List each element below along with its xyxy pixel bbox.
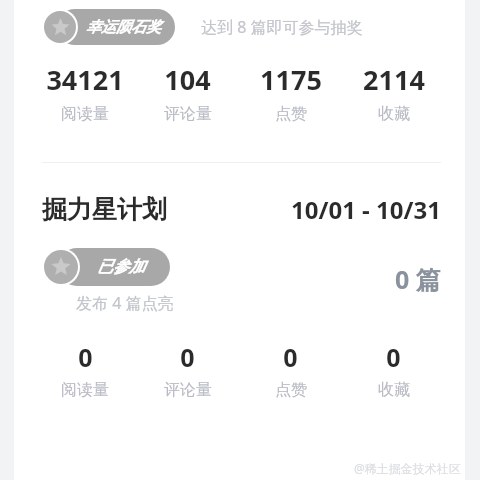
button[interactable]: 幸运陨石奖 [42,9,175,45]
staticText: 0 [78,340,93,374]
staticText: 阅读量 [61,104,109,124]
staticText: 10/01 - 10/31 [291,193,441,226]
staticText: 阅读量 [61,380,109,400]
staticText: 收藏 [378,380,410,400]
staticText: 评论量 [164,380,212,400]
staticText: 1175 [260,61,322,98]
staticText: 0 篇 [395,262,441,296]
staticText: 104 [164,61,211,98]
staticText: 已参加 [97,257,145,277]
staticText: 收藏 [378,104,410,124]
staticText: 发布 4 篇点亮 [76,292,174,314]
staticText: 2114 [363,61,425,98]
staticText: 点赞 [275,380,307,400]
staticText: 0 [283,340,298,374]
staticText: 评论量 [164,104,212,124]
staticText: 点赞 [275,104,307,124]
staticText: 0 [386,340,401,374]
staticText: @稀土掘金技术社区 [354,460,461,476]
staticText: 达到 8 篇即可参与抽奖 [201,16,363,38]
staticText: 34121 [46,61,124,98]
button[interactable]: 已参加 [42,248,170,286]
staticText: 幸运陨石奖 [86,18,161,37]
staticText: 0 [180,340,195,374]
staticText: 掘力星计划 [42,194,167,225]
